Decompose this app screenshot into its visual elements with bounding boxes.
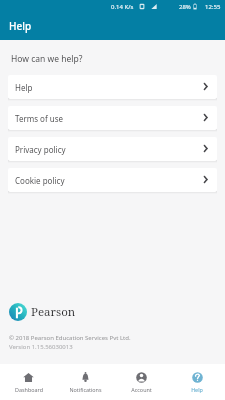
staticText: Pearson: [31, 304, 76, 320]
button[interactable]: Privacy policy: [8, 137, 217, 161]
staticText: 0.14 K/s: [111, 3, 134, 11]
button[interactable]: Dashboard: [0, 364, 57, 400]
staticText: Version 1.15.56030013: [9, 343, 73, 351]
staticText: 28%: [179, 3, 191, 11]
staticText: Notifications: [69, 386, 102, 393]
staticText: Help: [191, 386, 203, 393]
staticText: How can we help?: [11, 53, 83, 65]
staticText: Terms of use: [15, 113, 64, 124]
staticText: Cookie policy: [15, 175, 65, 186]
button[interactable]: Account: [113, 364, 169, 400]
button[interactable]: Help: [169, 364, 225, 400]
button[interactable]: Cookie policy: [8, 168, 217, 192]
staticText: Account: [131, 386, 152, 393]
staticText: Dashboard: [15, 386, 43, 393]
button[interactable]: Help: [8, 75, 217, 99]
staticText: © 2018 Pearson Education Services Pvt Lt…: [9, 334, 131, 342]
button[interactable]: Terms of use: [8, 106, 217, 130]
button[interactable]: Notifications: [57, 364, 113, 400]
staticText: Privacy policy: [15, 144, 66, 155]
staticText: 12:55: [205, 3, 221, 11]
staticText: Help: [9, 19, 32, 33]
staticText: Help: [15, 82, 33, 93]
